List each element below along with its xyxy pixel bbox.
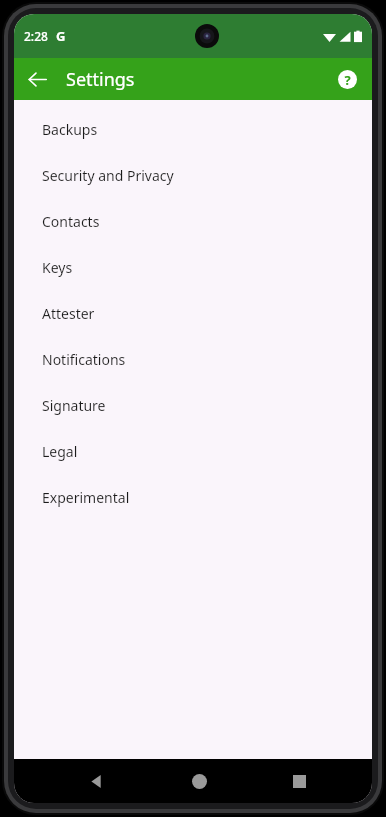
button[interactable]: Back (76, 761, 116, 801)
button[interactable]: Legal (14, 428, 372, 474)
button[interactable]: Experimental (14, 474, 372, 520)
staticText: Security and Privacy (42, 166, 174, 185)
button[interactable]: Back (19, 61, 55, 97)
button[interactable]: Contacts (14, 198, 372, 244)
staticText: Contacts (42, 212, 100, 231)
button[interactable]: Help (331, 63, 363, 95)
button[interactable]: Keys (14, 244, 372, 290)
staticText: Keys (42, 258, 73, 277)
button[interactable]: Recent apps (279, 761, 319, 801)
staticText: Experimental (42, 488, 130, 507)
button[interactable]: Attester (14, 290, 372, 336)
button[interactable]: Backups (14, 106, 372, 152)
staticText: Backups (42, 120, 98, 139)
staticText: G (56, 27, 66, 45)
button[interactable]: Signature (14, 382, 372, 428)
staticText: ? (344, 71, 351, 89)
staticText: Notifications (42, 350, 126, 369)
button[interactable]: Security and Privacy (14, 152, 372, 198)
staticText: Legal (42, 442, 78, 461)
staticText: Settings (66, 67, 135, 92)
staticText: Signature (42, 396, 106, 415)
button[interactable]: Notifications (14, 336, 372, 382)
button[interactable]: Home (179, 761, 219, 801)
staticText: Attester (42, 304, 95, 323)
staticText: 2:28 (24, 28, 48, 44)
